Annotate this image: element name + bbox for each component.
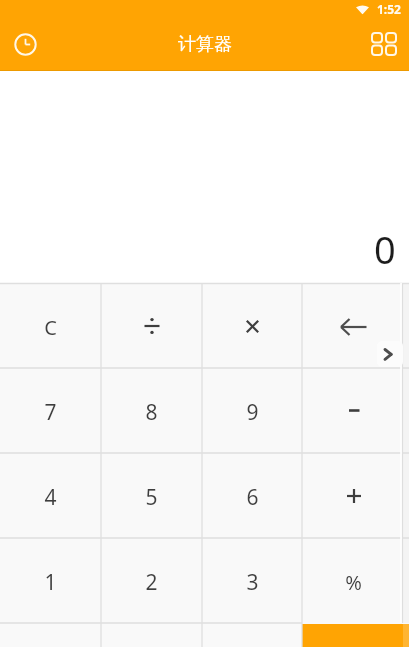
staticText: 4 — [44, 483, 57, 512]
staticText: 计算器 — [178, 33, 232, 56]
staticText: 8 — [145, 398, 158, 427]
button[interactable] — [0, 623, 101, 647]
button[interactable]: % — [302, 538, 405, 623]
button[interactable]: 2 — [101, 538, 202, 623]
button[interactable] — [101, 623, 202, 647]
staticText: 0 — [374, 223, 396, 275]
staticText: 2 — [145, 568, 158, 597]
button[interactable]: 7 — [0, 368, 101, 453]
button[interactable] — [302, 283, 405, 368]
staticText: % — [345, 569, 362, 596]
button[interactable] — [302, 624, 409, 647]
staticText: 7 — [44, 398, 57, 427]
button[interactable]: 6 — [202, 453, 302, 538]
button[interactable] — [202, 623, 302, 647]
button[interactable]: 1 — [0, 538, 101, 623]
button[interactable] — [101, 283, 202, 368]
button[interactable]: 4 — [0, 453, 101, 538]
button[interactable]: 3 — [202, 538, 302, 623]
staticText: 1 — [44, 568, 57, 597]
button[interactable] — [302, 368, 405, 453]
button[interactable]: 8 — [101, 368, 202, 453]
staticText: 5 — [145, 483, 158, 512]
button[interactable]: 9 — [202, 368, 302, 453]
button[interactable] — [302, 453, 405, 538]
button[interactable] — [13, 32, 38, 57]
staticText: C — [44, 314, 57, 341]
staticText: 9 — [246, 398, 259, 427]
staticText: 6 — [246, 483, 259, 512]
button[interactable] — [371, 31, 397, 57]
staticText: 1:52 — [377, 1, 401, 17]
button[interactable] — [202, 283, 302, 368]
staticText: 3 — [246, 568, 259, 597]
button[interactable]: C — [0, 283, 101, 368]
button[interactable]: 5 — [101, 453, 202, 538]
